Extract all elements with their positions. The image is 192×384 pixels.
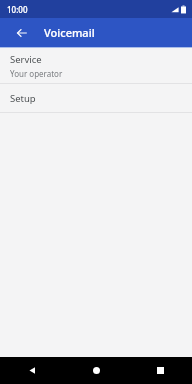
button[interactable]: Recent apps — [128, 357, 192, 384]
staticText: Service — [10, 53, 42, 66]
button[interactable]: Home — [64, 357, 128, 384]
button[interactable]: Back — [0, 357, 64, 384]
button[interactable]: Back — [11, 22, 33, 44]
button[interactable]: Service — [0, 48, 192, 83]
staticText: Your operator — [10, 68, 63, 79]
staticText: Voicemail — [44, 25, 95, 40]
button[interactable]: Setup — [0, 84, 192, 112]
staticText: Setup — [10, 92, 36, 105]
staticText: 10:00 — [7, 4, 28, 15]
